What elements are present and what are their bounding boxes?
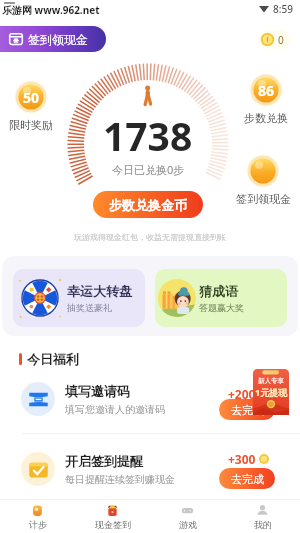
staticText: 开启签到提醒 [65,453,143,469]
staticText: 步数兑换 [244,111,288,125]
staticText: 现金签到 [95,519,131,530]
button[interactable]: 今日福利 [19,351,79,367]
button[interactable]: 开启签到提醒 [21,446,288,492]
staticText: 步数兑换金币 [109,197,187,213]
staticText: 去完成 [231,472,264,486]
button[interactable]: 填写邀请码 [21,376,288,422]
button[interactable]: 0 [260,30,284,49]
button[interactable]: 86 [248,72,284,108]
staticText: 限时奖励 [9,118,53,132]
staticText: 玩游戏得现金红包，收益无需提现直接到账 [74,232,226,242]
staticText: 乐游网 www.962.net [2,3,100,17]
staticText: 填写您邀请人的邀请码 [65,403,165,416]
staticText: 今日福利 [27,351,79,367]
staticText: 86 [258,81,275,100]
button[interactable]: 步数兑换 [238,111,294,125]
staticText: 今日已兑换0步 [112,162,185,177]
staticText: 每日提醒连续签到赚现金 [65,473,175,486]
button[interactable]: 新人专享 [253,369,289,415]
button[interactable]: Check in calendar [9,26,106,52]
staticText: 猜成语 [199,283,238,299]
staticText: 我的 [254,519,272,530]
staticText: 签到领现金 [28,32,88,47]
staticText: 填写邀请码 [65,383,130,399]
button[interactable]: 猜成语 [158,269,287,327]
staticText: 签到领现金 [236,192,291,206]
button[interactable]: 游戏 [150,500,225,533]
other: Check in calendar [9,32,23,46]
staticText: +300 [228,451,256,467]
button[interactable]: 限时奖励 [3,118,59,132]
button[interactable]: 去完成 [219,468,275,489]
staticText: 8:59 [273,2,293,16]
staticText: 幸运大转盘 [67,283,132,299]
button[interactable]: 幸运大转盘 [18,269,145,327]
staticText: 去完成 [231,403,264,417]
staticText: 抽奖送豪礼 [67,302,112,313]
staticText: 游戏 [179,519,197,530]
button[interactable]: 去完成 [219,399,275,420]
staticText: 新人专享 [258,377,284,385]
staticText: 50 [23,88,40,107]
staticText: +200 [228,386,256,402]
staticText: 计步 [29,519,47,530]
button[interactable]: 步数兑换金币 [93,191,203,218]
button[interactable]: 现金签到 [75,500,150,533]
staticText: 0 [278,33,284,47]
button[interactable]: 50 [13,79,49,115]
staticText: 1738 [103,109,193,162]
button[interactable]: 我的 [225,500,300,533]
button[interactable]: 签到领现金 [229,192,297,206]
button[interactable] [245,153,281,189]
staticText: 1元提现 [255,386,288,398]
button[interactable]: 计步 [0,500,75,533]
staticText: 答题赢大奖 [199,302,244,313]
